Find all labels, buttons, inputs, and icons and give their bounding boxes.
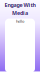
staticText: hello [16, 19, 24, 24]
staticText: Engage With [4, 1, 35, 8]
staticText: Media [12, 9, 28, 17]
